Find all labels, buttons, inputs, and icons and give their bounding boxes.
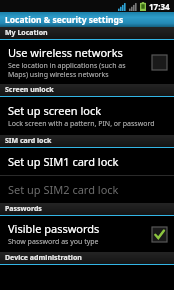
staticText: 17:34 [149,1,170,12]
staticText: Set up SIM2 card lock [8,182,119,197]
staticText: My Location [5,28,48,38]
button[interactable]: Set up SIM2 card lock [0,176,174,203]
staticText: Visible passwords [8,221,100,236]
staticText: SIM card lock [5,136,52,146]
staticText: Passwords [5,204,42,214]
staticText: Set up screen lock [8,103,102,118]
button[interactable]: Visible passwords [0,216,174,252]
button[interactable]: Use wireless networks [0,40,174,84]
button[interactable]: Set up screen lock [0,97,174,135]
staticText: Screen unlock [5,85,54,95]
staticText: Set up SIM1 card lock [8,154,119,169]
staticText: Location & security settings [5,14,124,26]
button[interactable]: Set up SIM1 card lock [0,148,174,175]
button[interactable]: Checked [151,226,168,243]
staticText: See location in applications (such as Ma… [8,61,126,79]
button[interactable]: Unchecked [151,54,168,71]
staticText: Device administration [5,253,82,263]
staticText: Lock screen with a pattern, PIN, or pass… [8,119,155,129]
staticText: Use wireless networks [8,45,123,60]
staticText: Show password as you type [8,237,99,247]
